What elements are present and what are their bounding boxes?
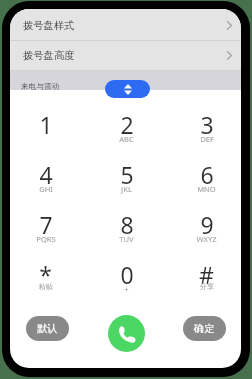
staticText: 粘贴 bbox=[39, 282, 53, 291]
staticText: 7 bbox=[39, 209, 53, 240]
staticText: GHI bbox=[39, 184, 53, 194]
staticText: 拨号盘高度 bbox=[23, 49, 75, 62]
staticText: 默认 bbox=[37, 322, 58, 335]
staticText: 8 bbox=[120, 209, 134, 240]
button[interactable]: 7 bbox=[10, 204, 87, 254]
button[interactable]: 1 bbox=[10, 104, 87, 154]
staticText: 来电与震动 bbox=[21, 82, 59, 90]
staticText: JKL bbox=[121, 184, 132, 194]
staticText: 3 bbox=[200, 109, 214, 140]
staticText: 1 bbox=[39, 109, 53, 140]
button[interactable]: 5 bbox=[87, 154, 164, 204]
staticText: 4 bbox=[39, 159, 53, 190]
staticText: MNO bbox=[197, 184, 216, 194]
button[interactable]: 默认 bbox=[26, 316, 69, 341]
staticText: TUV bbox=[119, 234, 134, 244]
button[interactable]: Resize dialpad bbox=[105, 80, 150, 98]
button[interactable]: 拨号盘样式 bbox=[10, 9, 241, 40]
button[interactable]: Call bbox=[108, 315, 145, 352]
staticText: PQRS bbox=[36, 234, 56, 244]
button[interactable]: # bbox=[164, 254, 241, 304]
staticText: 6 bbox=[200, 159, 214, 190]
button[interactable]: 9 bbox=[164, 204, 241, 254]
button[interactable]: 6 bbox=[164, 154, 241, 204]
staticText: 0 bbox=[120, 259, 134, 290]
staticText: # bbox=[199, 259, 214, 290]
button[interactable]: 3 bbox=[164, 104, 241, 154]
button[interactable]: 4 bbox=[10, 154, 87, 204]
staticText: * bbox=[39, 259, 52, 290]
button[interactable]: 确定 bbox=[183, 316, 226, 341]
staticText: 拨号盘样式 bbox=[23, 19, 75, 32]
button[interactable]: 2 bbox=[87, 104, 164, 154]
staticText: 2 bbox=[120, 109, 134, 140]
staticText: ABC bbox=[119, 134, 134, 144]
button[interactable]: 来电与震动 bbox=[10, 71, 241, 90]
button[interactable]: 0 bbox=[87, 254, 164, 304]
staticText: 分享 bbox=[200, 282, 214, 291]
staticText: 5 bbox=[120, 159, 134, 190]
staticText: 9 bbox=[200, 209, 214, 240]
button[interactable]: 拨号盘高度 bbox=[10, 41, 241, 70]
button[interactable]: 8 bbox=[87, 204, 164, 254]
staticText: WXYZ bbox=[196, 234, 217, 244]
staticText: DEF bbox=[200, 134, 214, 144]
staticText: + bbox=[124, 284, 129, 294]
staticText: 确定 bbox=[194, 322, 215, 335]
button[interactable]: * bbox=[10, 254, 87, 304]
